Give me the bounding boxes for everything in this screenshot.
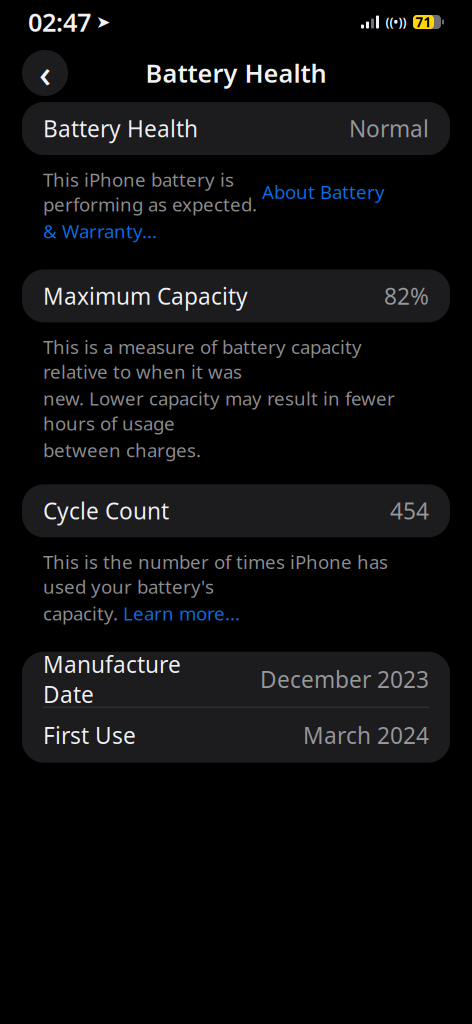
staticText: Battery Health: [145, 56, 326, 90]
staticText: This is a measure of battery capacity re…: [43, 334, 362, 384]
staticText: Normal: [349, 113, 429, 143]
staticText: This iPhone battery is performing as exp…: [43, 167, 262, 217]
staticText: 02:47: [28, 5, 91, 39]
button[interactable]: Cycle Count: [22, 484, 450, 537]
staticText: First Use: [43, 720, 136, 750]
button[interactable]: Back: [22, 50, 68, 96]
staticText: & Warranty...: [43, 219, 157, 243]
staticText: Cycle Count: [43, 496, 169, 526]
staticText: Maximum Capacity: [43, 281, 248, 311]
staticText: Manufacture Date: [43, 649, 181, 709]
staticText: 71: [415, 13, 431, 31]
button[interactable]: Battery Health: [22, 102, 450, 155]
staticText: About Battery: [262, 179, 385, 204]
staticText: ((•)): [385, 14, 406, 30]
staticText: 82%: [384, 281, 429, 311]
staticText: March 2024: [303, 720, 429, 750]
staticText: Battery Health: [43, 113, 198, 143]
staticText: ‹: [39, 48, 51, 98]
staticText: This is the number of times iPhone has u…: [43, 549, 388, 599]
staticText: Learn more...: [123, 601, 240, 626]
button[interactable]: First Use: [22, 708, 450, 763]
button[interactable]: Maximum Capacity: [22, 269, 450, 322]
staticText: between charges.: [43, 437, 201, 462]
staticText: December 2023: [260, 664, 429, 694]
staticText: capacity.: [43, 601, 123, 626]
staticText: new. Lower capacity may result in fewer …: [43, 386, 395, 436]
staticText: 454: [390, 496, 429, 526]
staticText: ➤: [96, 12, 111, 32]
button[interactable]: Manufacture Date: [22, 652, 450, 707]
